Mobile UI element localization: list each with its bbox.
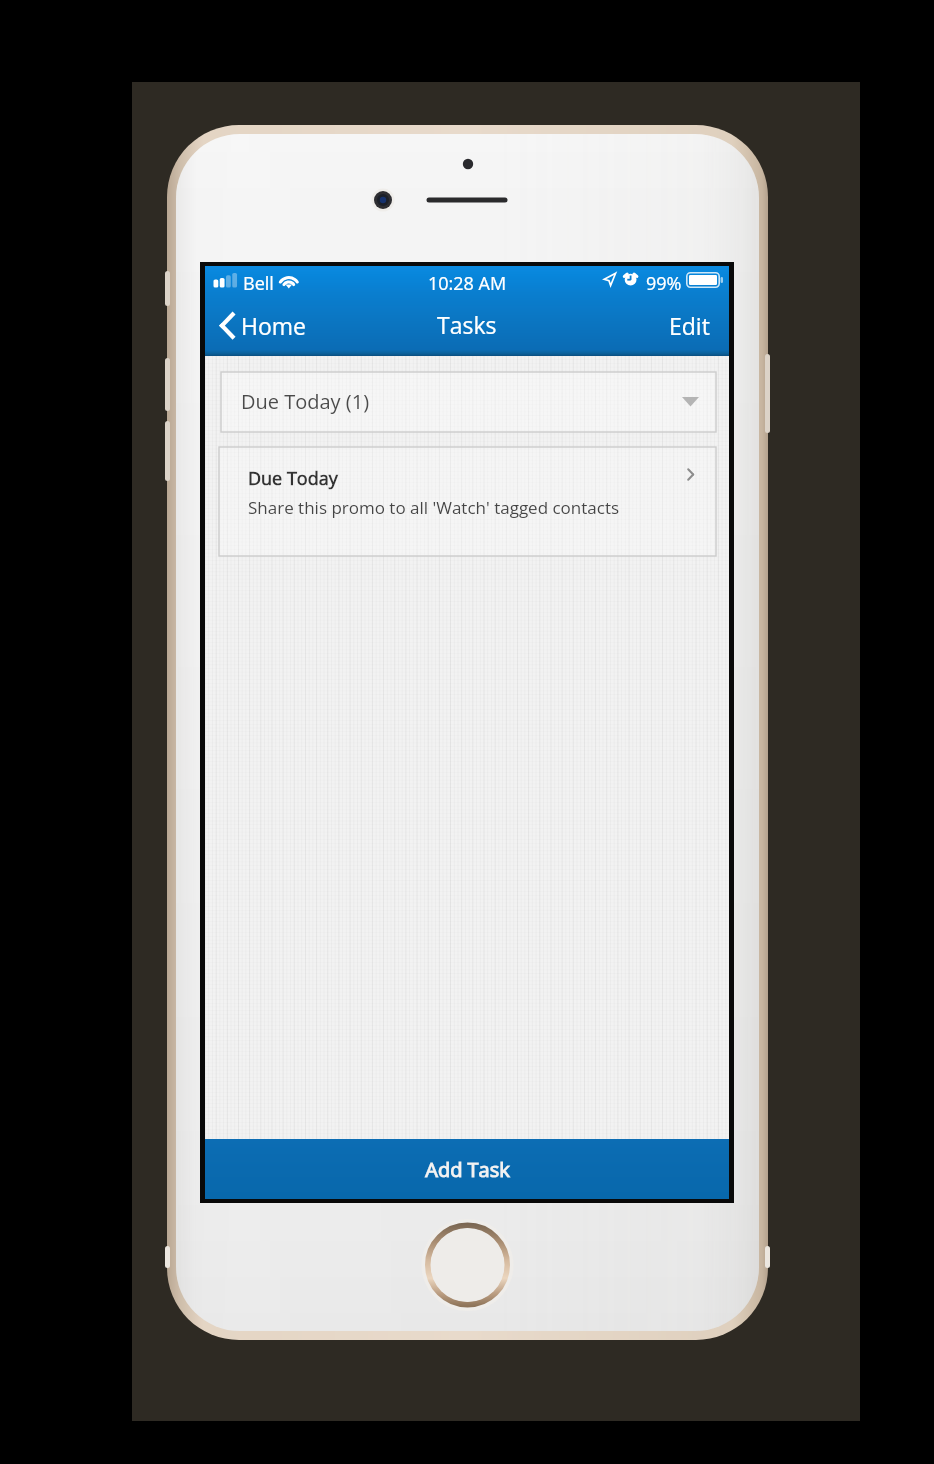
staticText: Add Task <box>425 1156 510 1183</box>
button[interactable]: Add Task <box>205 1139 729 1199</box>
staticText: Tasks <box>437 309 497 340</box>
staticText: 10:28 AM <box>428 271 507 296</box>
staticText: Home <box>241 310 307 341</box>
staticText: Share this promo to all 'Watch' tagged c… <box>248 496 620 519</box>
staticText: Due Today (1) <box>241 388 370 415</box>
staticText: 99% <box>646 271 682 296</box>
button[interactable]: Due Today (1) filter <box>221 372 716 432</box>
button[interactable]: Edit <box>651 300 729 356</box>
staticText: Due Today <box>248 466 338 491</box>
staticText: Bell <box>243 271 274 296</box>
button[interactable]: Due Today task details <box>219 447 716 556</box>
staticText: Edit <box>669 310 710 341</box>
button[interactable]: Back to Home <box>205 300 319 356</box>
